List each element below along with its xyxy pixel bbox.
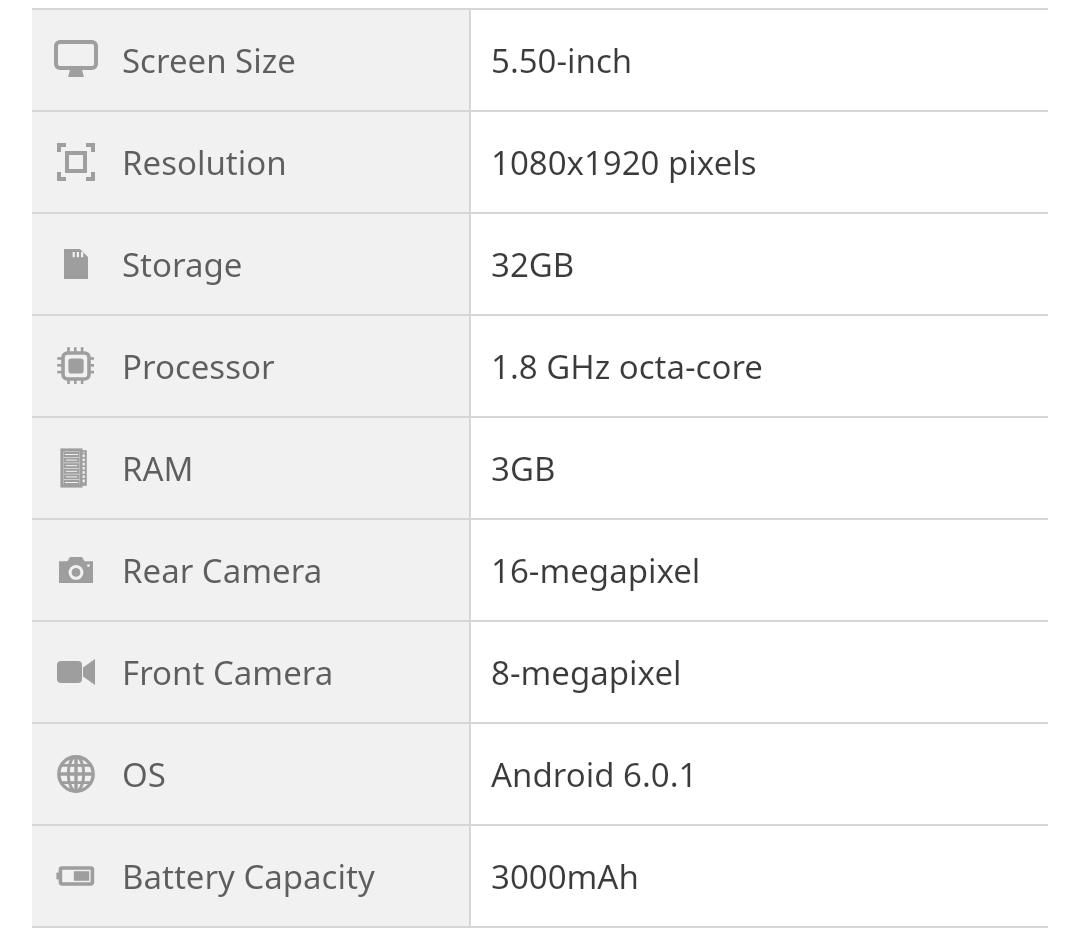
- button[interactable]: Rear Camera: [32, 520, 1048, 620]
- staticText: 3000mAh: [491, 854, 639, 899]
- button[interactable]: Screen Size: [32, 10, 1048, 110]
- staticText: OS: [122, 752, 166, 797]
- other: Screen Size: [52, 36, 100, 84]
- other: Processor: [52, 342, 100, 390]
- other: RAM: [52, 444, 100, 492]
- other: OS: [52, 750, 100, 798]
- other: Storage: [52, 240, 100, 288]
- button[interactable]: RAM: [32, 418, 1048, 518]
- button[interactable]: Front Camera: [32, 622, 1048, 722]
- button[interactable]: OS: [32, 724, 1048, 824]
- other: Battery Capacity: [52, 852, 100, 900]
- staticText: 32GB: [491, 242, 575, 287]
- staticText: 16-megapixel: [491, 548, 701, 593]
- staticText: 5.50-inch: [491, 38, 633, 83]
- staticText: Front Camera: [122, 650, 334, 695]
- staticText: Processor: [122, 344, 275, 389]
- button[interactable]: Storage: [32, 214, 1048, 314]
- staticText: 1.8 GHz octa-core: [491, 344, 763, 389]
- staticText: Android 6.0.1: [491, 752, 698, 797]
- staticText: RAM: [122, 446, 194, 491]
- other: Resolution: [52, 138, 100, 186]
- other: Rear Camera: [52, 546, 100, 594]
- staticText: Battery Capacity: [122, 854, 375, 899]
- button[interactable]: Resolution: [32, 112, 1048, 212]
- staticText: Rear Camera: [122, 548, 323, 593]
- button[interactable]: Battery Capacity: [32, 826, 1048, 926]
- other: Front Camera: [52, 648, 100, 696]
- staticText: 3GB: [491, 446, 556, 491]
- staticText: Resolution: [122, 140, 287, 185]
- button[interactable]: Processor: [32, 316, 1048, 416]
- staticText: 8-megapixel: [491, 650, 682, 695]
- staticText: Screen Size: [122, 38, 296, 83]
- staticText: Storage: [122, 242, 243, 287]
- staticText: 1080x1920 pixels: [491, 140, 757, 185]
